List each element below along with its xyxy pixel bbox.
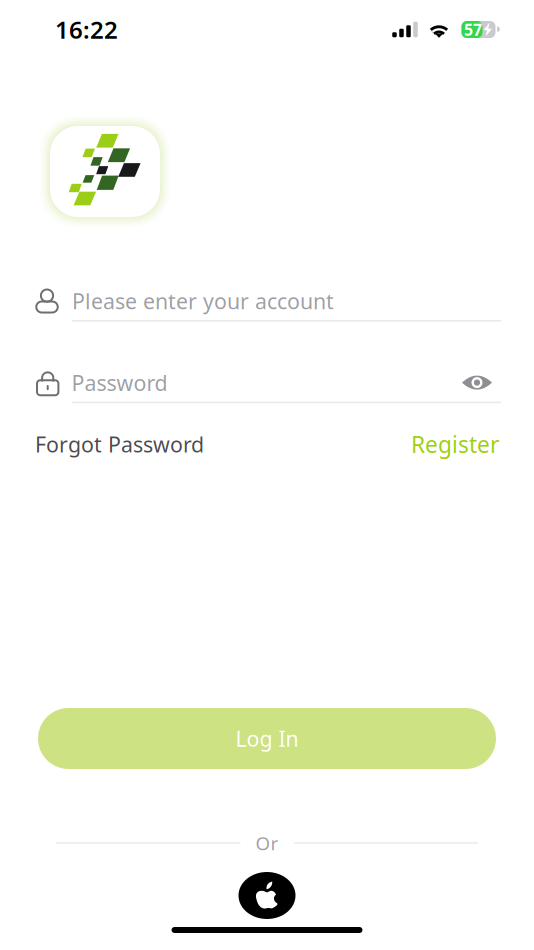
staticText: 16:22 [55, 14, 118, 45]
staticText: Forgot Password [35, 430, 204, 458]
button[interactable]: Show password [462, 374, 492, 392]
staticText: 57 [464, 19, 482, 40]
button[interactable]: Log In [38, 708, 496, 769]
button[interactable]: Register [411, 431, 499, 457]
staticText: Register [411, 429, 499, 459]
staticText: Password [71, 368, 167, 397]
button[interactable]: Sign in with Apple [238, 872, 295, 919]
staticText: Log In [235, 724, 298, 753]
button[interactable]: Forgot Password [35, 431, 204, 457]
staticText: Please enter your account [72, 287, 334, 315]
staticText: Or [255, 831, 278, 855]
